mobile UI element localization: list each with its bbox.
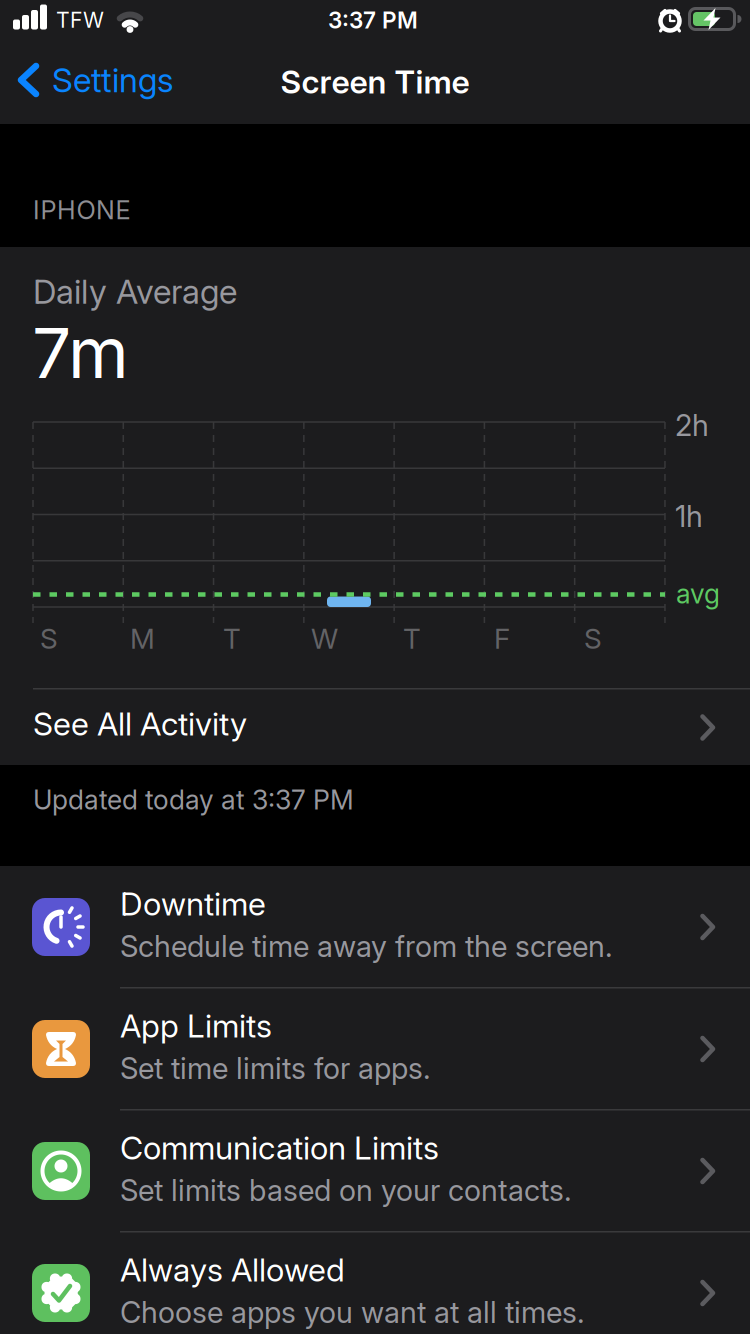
staticText: M xyxy=(130,622,155,655)
staticText: Screen Time xyxy=(280,63,469,101)
staticText: Communication Limits xyxy=(120,1129,439,1167)
staticText: Settings xyxy=(52,60,174,100)
staticText: Set time limits for apps. xyxy=(120,1051,431,1086)
staticText: Updated today at 3:37 PM xyxy=(33,784,354,815)
staticText: TFW xyxy=(56,7,104,33)
staticText: S xyxy=(584,622,602,655)
button[interactable]: Downtime xyxy=(0,866,750,988)
button[interactable]: Always Allowed xyxy=(0,1232,750,1334)
staticText: F xyxy=(494,622,510,655)
staticText: T xyxy=(223,622,241,655)
staticText: 7m xyxy=(32,312,129,394)
button[interactable]: App Limits xyxy=(0,988,750,1110)
staticText: See All Activity xyxy=(33,705,247,743)
staticText: IPHONE xyxy=(33,195,130,225)
staticText: 1h xyxy=(675,499,703,534)
staticText: Downtime xyxy=(120,885,266,923)
staticText: App Limits xyxy=(120,1007,272,1045)
staticText: avg xyxy=(676,578,720,609)
staticText: S xyxy=(40,622,58,655)
staticText: Choose apps you want at all times. xyxy=(120,1295,585,1330)
staticText: Always Allowed xyxy=(120,1251,345,1289)
staticText: W xyxy=(311,622,338,655)
staticText: 2h xyxy=(675,408,709,443)
staticText: Set limits based on your contacts. xyxy=(120,1173,572,1208)
staticText: Schedule time away from the screen. xyxy=(120,929,613,964)
staticText: 3:37 PM xyxy=(328,7,418,34)
button[interactable]: Settings xyxy=(0,45,174,115)
staticText: T xyxy=(403,622,421,655)
staticText: Daily Average xyxy=(33,272,237,311)
button[interactable]: Communication Limits xyxy=(0,1110,750,1232)
button[interactable]: See All Activity xyxy=(0,689,750,765)
